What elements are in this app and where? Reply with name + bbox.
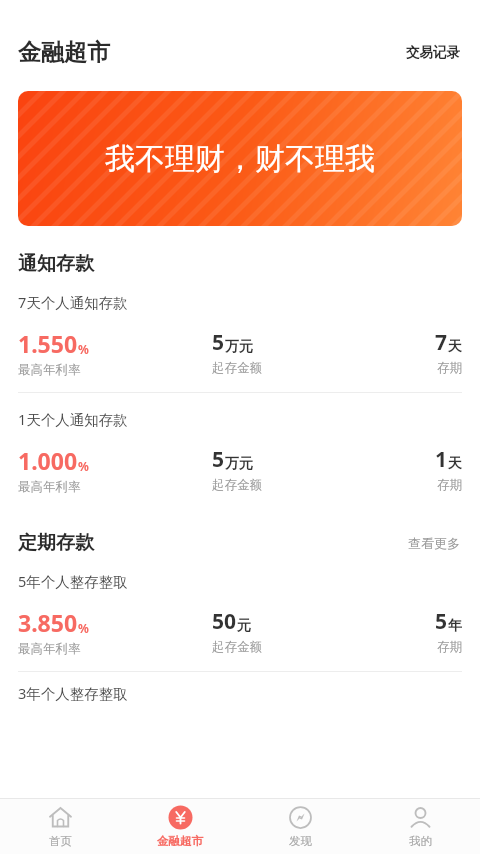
staticText: % [78, 620, 89, 636]
staticText: 起存金额 [212, 360, 262, 376]
staticText: % [78, 458, 89, 474]
staticText: 3年个人整存整取 [18, 683, 128, 703]
staticText: 存期 [437, 477, 462, 493]
button[interactable]: 5年个人整存整取 [0, 555, 480, 671]
staticText: 定期存款 [18, 531, 94, 555]
staticText: 我的 [409, 834, 432, 848]
button[interactable]: 发现 [240, 805, 360, 848]
staticText: 天 [448, 338, 462, 356]
staticText: 1天个人通知存款 [18, 409, 128, 429]
staticText: 存期 [437, 360, 462, 376]
staticText: 1 [435, 445, 448, 474]
button[interactable]: 查看更多 [406, 531, 462, 555]
staticText: 3.850 [18, 607, 78, 638]
staticText: 最高年利率 [18, 641, 81, 657]
staticText: 最高年利率 [18, 479, 81, 495]
staticText: 起存金额 [212, 639, 262, 655]
staticText: 元 [237, 617, 251, 635]
staticText: 万元 [225, 455, 253, 473]
button[interactable]: 我不理财，财不理我 [18, 91, 462, 226]
staticText: 5年个人整存整取 [18, 571, 128, 591]
staticText: 我不理财，财不理我 [105, 140, 375, 178]
staticText: 首页 [49, 834, 72, 848]
staticText: 1.000 [18, 445, 78, 476]
staticText: 5 [212, 328, 225, 357]
staticText: 7天个人通知存款 [18, 292, 128, 312]
staticText: 7 [435, 328, 448, 357]
staticText: 金融超市 [157, 834, 203, 848]
button[interactable]: 交易记录 [404, 40, 462, 65]
staticText: 存期 [437, 639, 462, 655]
staticText: 最高年利率 [18, 362, 81, 378]
staticText: 1.550 [18, 328, 78, 359]
staticText: 查看更多 [408, 535, 460, 551]
button[interactable]: 金融超市 [120, 805, 240, 848]
button[interactable]: 我的 [360, 805, 480, 848]
staticText: 5 [212, 445, 225, 474]
staticText: 通知存款 [18, 252, 94, 276]
button[interactable]: 3年个人整存整取 [0, 672, 480, 703]
staticText: 起存金额 [212, 477, 262, 493]
staticText: 交易记录 [406, 44, 460, 61]
button[interactable]: 7天个人通知存款 [0, 276, 480, 392]
staticText: 万元 [225, 338, 253, 356]
staticText: 年 [448, 617, 462, 635]
staticText: 发现 [289, 834, 312, 848]
staticText: 50 [212, 607, 237, 636]
staticText: 金融超市 [18, 38, 110, 67]
button[interactable]: 1天个人通知存款 [0, 393, 480, 509]
button[interactable]: 首页 [0, 805, 120, 848]
staticText: 天 [448, 455, 462, 473]
staticText: 5 [435, 607, 448, 636]
staticText: % [78, 341, 89, 357]
